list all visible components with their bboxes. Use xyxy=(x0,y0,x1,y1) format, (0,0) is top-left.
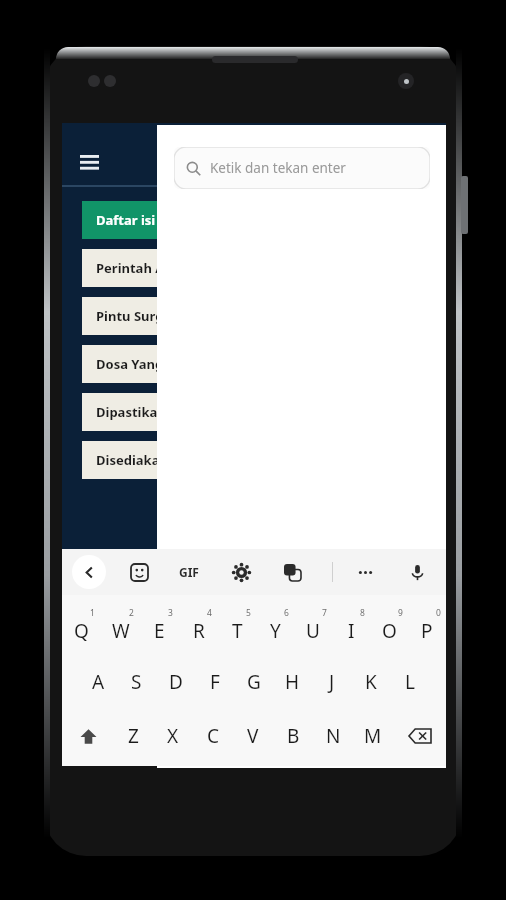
staticText: Dipastikan Masuk xyxy=(96,403,213,421)
button[interactable]: Dosa Yang Tak xyxy=(82,345,430,383)
button[interactable]: Q xyxy=(62,601,101,655)
button[interactable]: Settings xyxy=(224,555,258,589)
button[interactable]: Shift xyxy=(62,709,114,763)
button[interactable]: Open menu xyxy=(72,145,106,179)
staticText: Disediakan Bagi xyxy=(96,451,200,469)
button[interactable]: Voice input xyxy=(400,555,434,589)
staticText: K xyxy=(365,669,377,695)
staticText: Ketik dan tekan enter xyxy=(210,159,346,177)
staticText: B xyxy=(287,723,300,749)
staticText: C xyxy=(207,723,220,749)
staticText: E xyxy=(154,618,165,644)
button[interactable]: Z xyxy=(114,709,153,763)
staticText: 1 xyxy=(90,607,95,619)
staticText: Q xyxy=(74,618,89,644)
button[interactable]: X xyxy=(153,709,193,763)
button[interactable]: L xyxy=(390,655,429,709)
button[interactable]: C xyxy=(193,709,233,763)
button[interactable]: GIF xyxy=(172,555,206,589)
button[interactable]: O xyxy=(370,601,408,655)
button[interactable]: B xyxy=(273,709,313,763)
button[interactable]: M xyxy=(353,709,393,763)
staticText: M xyxy=(364,723,382,749)
staticText: S xyxy=(131,669,142,695)
button[interactable]: P xyxy=(408,601,446,655)
staticText: R xyxy=(193,618,205,644)
staticText: Dosa Yang Tak xyxy=(96,355,189,373)
staticText: Y xyxy=(270,618,281,644)
staticText: 2 xyxy=(129,607,134,619)
staticText: D xyxy=(169,669,183,695)
button[interactable]: Pintu Surga xyxy=(82,297,430,335)
other: Power xyxy=(461,176,468,234)
staticText: T xyxy=(232,618,243,644)
staticText: A xyxy=(92,669,105,695)
button[interactable]: Stickers xyxy=(122,555,156,589)
staticText: 7 xyxy=(322,607,327,619)
button[interactable]: U xyxy=(294,601,332,655)
button[interactable]: Translate xyxy=(275,555,309,589)
button[interactable]: W xyxy=(101,601,140,655)
button[interactable]: Ketik dan tekan enter xyxy=(174,147,430,189)
staticText: 5 xyxy=(246,607,251,619)
staticText: 6 xyxy=(284,607,289,619)
staticText: Pintu Surga xyxy=(96,307,172,325)
button[interactable]: More options xyxy=(348,555,382,589)
button[interactable]: F xyxy=(195,655,234,709)
staticText: N xyxy=(326,723,341,749)
staticText: Daftar isi xyxy=(96,211,156,229)
staticText: 0 xyxy=(436,607,441,619)
button[interactable]: Perintah Agung xyxy=(82,249,430,287)
staticText: O xyxy=(382,618,397,644)
button[interactable]: N xyxy=(313,709,353,763)
staticText: P xyxy=(421,618,433,644)
staticText: V xyxy=(247,723,259,749)
staticText: L xyxy=(405,669,415,695)
button[interactable]: R xyxy=(179,601,218,655)
button[interactable]: J xyxy=(312,655,351,709)
staticText: 3 xyxy=(168,607,173,619)
staticText: GIF xyxy=(179,564,199,580)
staticText: Perintah Agung xyxy=(96,259,198,277)
button[interactable]: Backspace xyxy=(393,709,446,763)
button[interactable]: T xyxy=(218,601,256,655)
button[interactable]: I xyxy=(332,601,370,655)
button[interactable]: E xyxy=(140,601,179,655)
button[interactable]: G xyxy=(234,655,273,709)
staticText: 9 xyxy=(398,607,403,619)
staticText: Z xyxy=(128,723,139,749)
button[interactable]: Y xyxy=(256,601,294,655)
button[interactable]: K xyxy=(351,655,390,709)
button[interactable]: A xyxy=(79,655,117,709)
staticText: I xyxy=(348,618,355,644)
staticText: 8 xyxy=(360,607,365,619)
staticText: 4 xyxy=(207,607,212,619)
staticText: G xyxy=(247,669,261,695)
button[interactable]: Daftar isi xyxy=(82,201,430,239)
staticText: F xyxy=(210,669,220,695)
staticText: H xyxy=(285,669,300,695)
button[interactable]: D xyxy=(156,655,195,709)
staticText: U xyxy=(306,618,320,644)
button[interactable]: V xyxy=(233,709,273,763)
button[interactable]: H xyxy=(273,655,312,709)
staticText: W xyxy=(112,618,130,644)
button[interactable]: Back xyxy=(72,555,106,589)
staticText: J xyxy=(329,669,335,695)
button[interactable]: S xyxy=(117,655,156,709)
button[interactable]: Dipastikan Masuk xyxy=(82,393,430,431)
button[interactable]: Disediakan Bagi xyxy=(82,441,430,479)
staticText: X xyxy=(167,723,179,749)
